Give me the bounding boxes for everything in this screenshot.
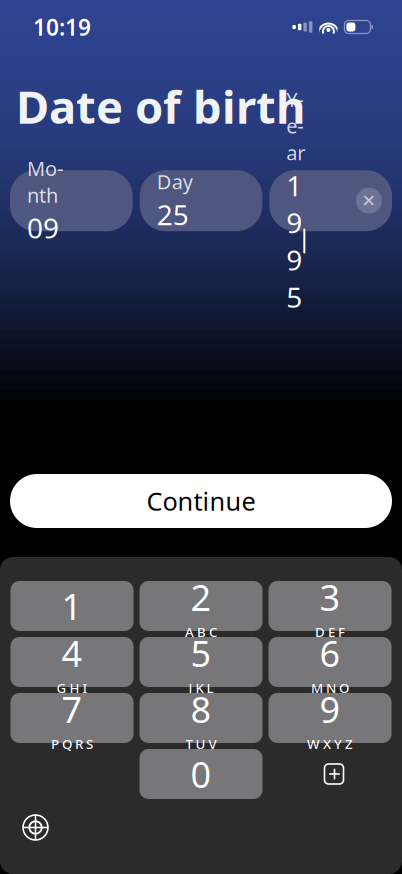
button[interactable]: 8 (139, 693, 262, 743)
staticText: Day (157, 168, 193, 195)
staticText: J K L (188, 679, 213, 697)
staticText: G H I (56, 679, 87, 697)
button[interactable]: 4 (10, 637, 133, 687)
staticText: A B C (185, 623, 217, 641)
button[interactable]: 5 (139, 637, 262, 687)
staticText: 1 (61, 582, 82, 630)
button[interactable]: Month (10, 170, 133, 231)
button[interactable]: Year (269, 170, 392, 231)
button[interactable]: 2 (139, 581, 262, 631)
staticText: Month (27, 155, 63, 208)
button[interactable]: Delete (268, 749, 391, 799)
staticText: 6 (319, 629, 340, 677)
staticText: 10:19 (33, 12, 91, 42)
staticText: ✕ (361, 191, 376, 211)
staticText: 25 (157, 196, 189, 233)
staticText: 4 (61, 629, 82, 677)
button[interactable]: 9 (268, 693, 391, 743)
button[interactable]: 6 (268, 637, 391, 687)
staticText: P Q R S (51, 735, 93, 753)
button[interactable]: Next keyboard (22, 814, 49, 841)
staticText: 3 (319, 573, 340, 621)
button[interactable]: 1 (10, 581, 133, 631)
staticText: M N O (311, 679, 349, 697)
staticText: 5 (190, 629, 211, 677)
staticText: D E F (315, 623, 345, 641)
staticText: W X Y Z (307, 735, 353, 753)
staticText: T U V (185, 735, 216, 753)
button[interactable]: 7 (10, 693, 133, 743)
staticText: 1995 (286, 167, 302, 315)
staticText: 2 (190, 573, 211, 621)
button[interactable]: 0 (139, 749, 262, 799)
button[interactable]: Continue (10, 474, 392, 528)
button[interactable]: 3 (268, 581, 391, 631)
staticText: 0 (190, 750, 211, 798)
staticText: 8 (190, 685, 211, 733)
staticText: Continue (146, 484, 255, 518)
staticText: Year (286, 86, 305, 166)
button[interactable]: Day (140, 170, 262, 231)
staticText: 7 (61, 685, 82, 733)
staticText: 09 (27, 209, 59, 246)
staticText: Date of birth (16, 76, 305, 136)
staticText: 9 (319, 685, 340, 733)
